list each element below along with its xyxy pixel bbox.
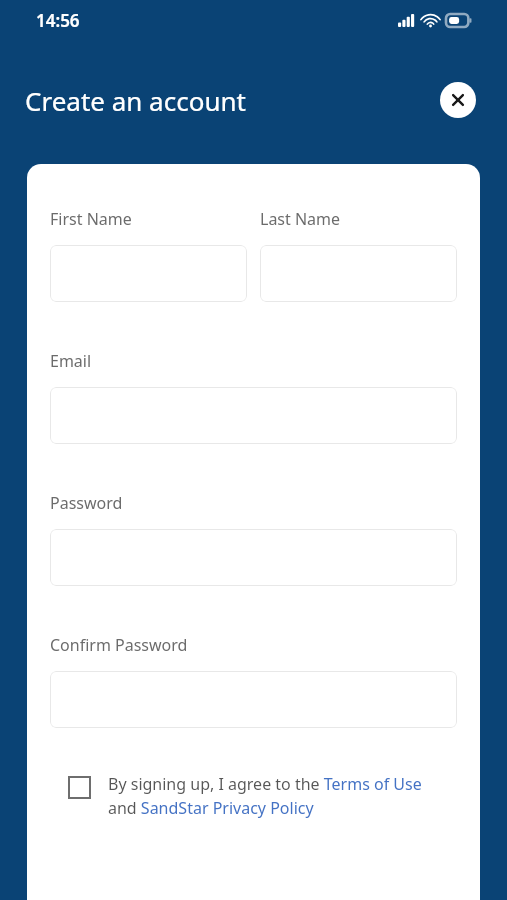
staticText: Create an account bbox=[25, 83, 246, 118]
button[interactable] bbox=[260, 245, 457, 302]
staticText: Password bbox=[50, 492, 123, 514]
staticText: By signing up, I agree to the Terms of U… bbox=[108, 773, 428, 819]
button[interactable]: Close bbox=[440, 82, 476, 118]
staticText: 14:56 bbox=[36, 9, 80, 32]
staticText: Confirm Password bbox=[50, 634, 188, 656]
staticText: Email bbox=[50, 350, 92, 372]
button[interactable] bbox=[50, 671, 457, 728]
button[interactable] bbox=[50, 245, 247, 302]
button[interactable] bbox=[50, 529, 457, 586]
button[interactable] bbox=[50, 387, 457, 444]
button[interactable]: Agree to terms bbox=[50, 773, 457, 819]
staticText: First Name bbox=[50, 208, 132, 230]
other: Agree to terms bbox=[68, 776, 91, 799]
staticText: Last Name bbox=[260, 208, 341, 230]
